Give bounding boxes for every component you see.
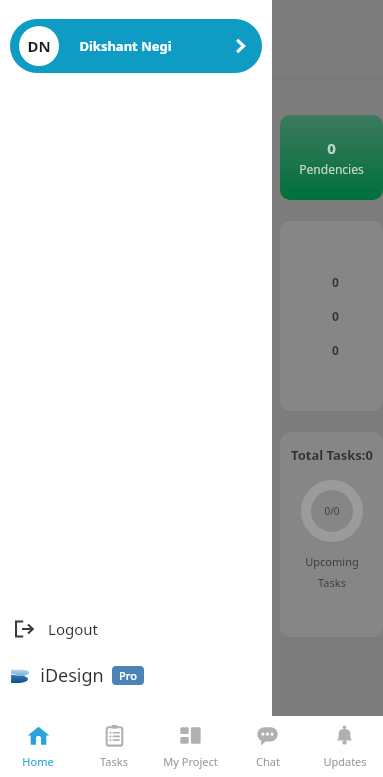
- staticText: Tasks: [318, 575, 346, 590]
- staticText: Updates: [323, 754, 367, 769]
- button[interactable]: My Project: [152, 716, 229, 777]
- staticText: Total Tasks:0: [291, 446, 373, 464]
- button[interactable]: Logout: [0, 609, 272, 649]
- staticText: Pro: [119, 668, 137, 683]
- staticText: Upcoming: [305, 554, 359, 569]
- button[interactable]: iDesign: [10, 663, 144, 688]
- staticText: DN: [27, 36, 51, 56]
- staticText: 0: [332, 342, 339, 358]
- staticText: Dikshant Negi: [79, 37, 172, 55]
- button[interactable]: 0: [280, 221, 383, 411]
- button[interactable]: Updates: [306, 716, 383, 777]
- staticText: 0/0: [324, 504, 340, 518]
- staticText: 0: [332, 308, 339, 324]
- button[interactable]: Home: [0, 716, 76, 777]
- staticText: 0: [327, 138, 336, 158]
- staticText: iDesign: [40, 663, 104, 688]
- button[interactable]: Tasks: [76, 716, 152, 777]
- button[interactable]: Total Tasks:0: [280, 432, 383, 637]
- staticText: Tasks: [100, 754, 128, 769]
- button[interactable]: Chat: [229, 716, 306, 777]
- staticText: Pendencies: [299, 161, 364, 177]
- staticText: 0: [332, 274, 339, 290]
- staticText: Home: [22, 754, 54, 769]
- staticText: Logout: [48, 619, 98, 639]
- staticText: My Project: [163, 754, 218, 769]
- staticText: Chat: [256, 754, 280, 769]
- button[interactable]: 0: [280, 115, 383, 200]
- button[interactable]: DN: [10, 19, 262, 73]
